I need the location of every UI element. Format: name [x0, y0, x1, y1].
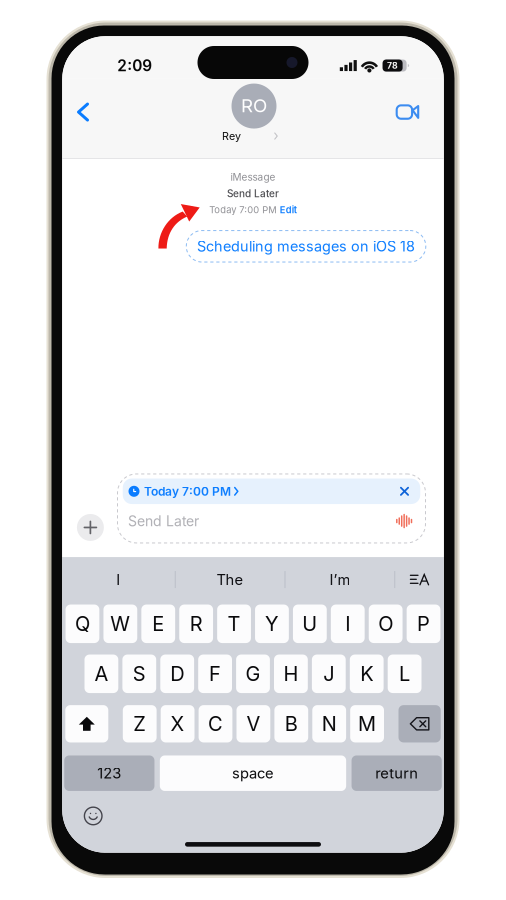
button[interactable]: S: [122, 655, 156, 693]
button[interactable]: Back: [63, 90, 103, 134]
staticText: Scheduling messages on iOS 18: [197, 238, 415, 255]
button[interactable]: Edit: [280, 204, 297, 215]
staticText: V: [246, 712, 260, 736]
button[interactable]: A: [84, 655, 118, 693]
staticText: return: [375, 764, 418, 782]
button[interactable]: Delete: [398, 705, 441, 742]
staticText: RO: [241, 94, 267, 117]
button[interactable]: C: [199, 705, 232, 742]
button[interactable]: Z: [123, 705, 157, 742]
staticText: R: [190, 612, 203, 636]
button[interactable]: D: [160, 655, 194, 693]
button[interactable]: F: [198, 655, 232, 693]
staticText: I: [345, 612, 350, 636]
staticText: S: [133, 662, 146, 686]
button[interactable]: R: [179, 605, 213, 643]
staticText: Q: [75, 612, 90, 636]
button[interactable]: L: [388, 655, 421, 693]
button[interactable]: I’m: [285, 558, 394, 602]
button[interactable]: Formatting: [395, 558, 444, 602]
button[interactable]: 123: [64, 755, 154, 791]
button[interactable]: W: [103, 605, 137, 643]
button[interactable]: FaceTime: [386, 90, 430, 134]
button[interactable]: RO: [206, 84, 301, 142]
button[interactable]: G: [236, 655, 270, 693]
staticText: U: [302, 612, 317, 636]
staticText: Rey: [222, 130, 241, 142]
staticText: H: [283, 662, 298, 686]
staticText: Z: [133, 712, 146, 736]
staticText: D: [170, 662, 184, 686]
staticText: Y: [265, 612, 279, 636]
staticText: N: [322, 712, 337, 736]
button[interactable]: I: [331, 605, 365, 643]
staticText: T: [227, 612, 240, 636]
staticText: F: [209, 662, 221, 686]
staticText: G: [245, 662, 260, 686]
staticText: M: [358, 712, 376, 736]
button[interactable]: return: [352, 755, 442, 791]
button[interactable]: Y: [255, 605, 289, 643]
button[interactable]: Shift: [65, 705, 108, 742]
staticText: J: [323, 662, 334, 686]
button[interactable]: Add attachment: [77, 514, 104, 541]
staticText: The: [217, 571, 244, 588]
button[interactable]: The: [176, 558, 285, 602]
staticText: W: [110, 612, 130, 636]
staticText: E: [152, 612, 164, 636]
button[interactable]: N: [312, 705, 346, 742]
button[interactable]: T: [217, 605, 251, 643]
staticText: K: [360, 662, 373, 686]
button[interactable]: space: [160, 755, 346, 791]
button[interactable]: J: [312, 655, 346, 693]
button[interactable]: B: [274, 705, 308, 742]
staticText: P: [417, 612, 430, 636]
button[interactable]: E: [141, 605, 175, 643]
staticText: 123: [97, 764, 121, 782]
staticText: iMessage: [230, 171, 275, 183]
staticText: I: [116, 571, 120, 588]
staticText: 78: [387, 60, 398, 71]
staticText: space: [232, 764, 274, 782]
button[interactable]: Cancel scheduled send: [394, 481, 414, 501]
button[interactable]: P: [407, 605, 440, 643]
button[interactable]: U: [293, 605, 327, 643]
button[interactable]: Emoji: [73, 800, 113, 832]
button[interactable]: X: [161, 705, 194, 742]
button[interactable]: O: [369, 605, 402, 643]
button[interactable]: H: [274, 655, 308, 693]
staticText: 2:09: [117, 56, 152, 75]
staticText: Edit: [280, 204, 297, 215]
button[interactable]: Audio message: [393, 511, 415, 531]
staticText: B: [285, 712, 298, 736]
button[interactable]: I: [62, 558, 175, 602]
button[interactable]: Q: [65, 605, 99, 643]
staticText: X: [171, 712, 185, 736]
staticText: I’m: [329, 571, 350, 588]
button[interactable]: Scheduling messages on iOS 18: [186, 230, 426, 262]
staticText: Today 7:00 PM: [209, 204, 276, 215]
staticText: Send Later: [128, 513, 199, 529]
staticText: O: [378, 612, 393, 636]
button[interactable]: V: [236, 705, 270, 742]
button[interactable]: M: [350, 705, 384, 742]
staticText: L: [399, 662, 410, 686]
staticText: Today 7:00 PM: [144, 484, 231, 498]
staticText: C: [208, 712, 223, 736]
staticText: A: [94, 662, 108, 686]
button[interactable]: K: [350, 655, 384, 693]
staticText: Send Later: [227, 188, 279, 200]
